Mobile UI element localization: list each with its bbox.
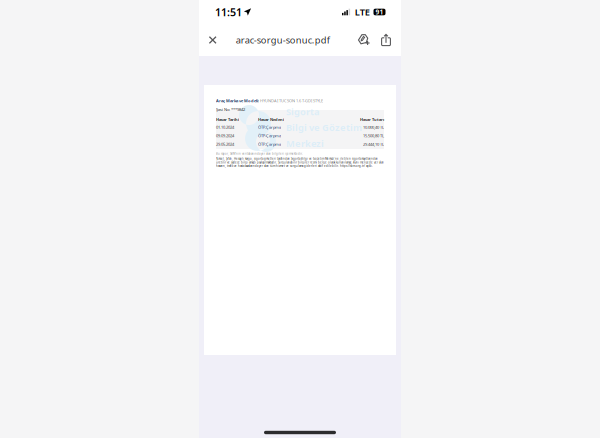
staticText: ÖTP-Çarpma: [258, 125, 281, 130]
staticText: 15.500,80 TL: [363, 133, 384, 138]
button[interactable]: Share: [375, 24, 397, 56]
staticText: 10.000,40 TL: [363, 125, 384, 130]
staticText: Hasar Nedeni: [258, 117, 284, 122]
staticText: ÖTP-Çarpma: [258, 142, 281, 147]
staticText: Bilgi ve Gözetim: [286, 121, 362, 134]
staticText: Araç Marka ve Modeli:: [216, 98, 259, 103]
button[interactable]: Close: [202, 24, 224, 56]
staticText: Yüksel, Şifalı, Hesaplı kargo, sigorta ş…: [216, 157, 384, 168]
staticText: 09.09.2024: [216, 133, 234, 138]
staticText: Merkezi: [286, 137, 324, 150]
staticText: HYUNDAI TUCSON 1.6 T-GDI STYLE: [259, 98, 323, 103]
button[interactable]: arac-sorgu-sonuc.pdf: [236, 24, 330, 56]
staticText: 29.05.2024: [216, 142, 234, 147]
staticText: arac-sorgu-sonuc.pdf: [236, 34, 330, 46]
staticText: LTE: [355, 6, 370, 18]
staticText: Sigorta: [286, 105, 320, 118]
staticText: 01.10.2024: [216, 125, 234, 130]
staticText: Hasar Tutarı: [360, 117, 384, 122]
staticText: Hasar Tarihi: [216, 117, 239, 122]
staticText: 91: [375, 8, 383, 16]
staticText: Şasi No: ***9842: [216, 107, 245, 112]
staticText: ÖTP-Çarpma: [258, 133, 281, 138]
button[interactable]: Markup: [353, 24, 375, 56]
staticText: 29.444,10 TL: [363, 142, 384, 147]
staticText: 11:51: [215, 5, 242, 19]
staticText: Bu rapor, SBM'nin veritabanında yer alan…: [216, 152, 303, 155]
